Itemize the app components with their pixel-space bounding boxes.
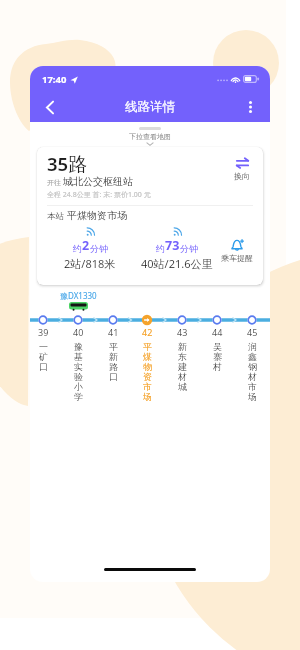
staticText: 73 [165,237,180,254]
staticText: 本站 [47,210,67,222]
staticText: 资 [143,371,152,381]
staticText: 2站/818米 [64,256,116,271]
staticText: 场 [143,391,152,401]
button[interactable]: 乘车提醒 [217,235,257,269]
staticText: 口 [39,361,48,371]
staticText: 40 [73,326,84,338]
staticText: 场 [248,391,257,401]
staticText: 41 [108,326,119,338]
staticText: 42 [142,326,153,338]
button[interactable]: 换向 [222,151,262,189]
staticText: 煤 [143,351,152,361]
staticText: 豫DX1330 [60,290,97,301]
staticText: 全程 24.8公里 首: 末: 票价1.00 元 [47,190,151,200]
staticText: 小 [74,381,83,391]
staticText: 40站/21.6公里 [141,256,213,271]
staticText: 基 [74,351,83,361]
staticText: 39 [38,326,49,338]
staticText: 开往 [47,178,63,188]
staticText: 物 [143,361,152,371]
staticText: 材 [178,371,187,381]
staticText: 分钟 [90,243,108,254]
staticText: 新 [178,341,187,351]
staticText: 45 [247,326,258,338]
staticText: 材 [248,371,257,381]
staticText: 平 [143,341,152,351]
staticText: 建 [178,361,187,371]
staticText: 一 [39,341,48,351]
staticText: 下拉查看地图 [129,132,171,141]
staticText: 约 [73,243,82,254]
staticText: 2 [82,237,90,254]
staticText: 寨 [213,351,222,361]
staticText: 学 [74,391,83,401]
button[interactable]: More options [235,92,265,122]
staticText: 口 [109,371,118,381]
staticText: 乘车提醒 [221,253,253,263]
staticText: 路 [109,361,118,371]
staticText: 验 [74,371,83,381]
staticText: 43 [177,326,188,338]
staticText: 东 [178,351,187,361]
staticText: 吴 [213,341,222,351]
button[interactable]: Back [34,92,66,122]
staticText: 分钟 [180,243,198,254]
staticText: 17:40 [42,73,67,86]
staticText: 润 [248,341,257,351]
staticText: 线路详情 [125,99,175,115]
staticText: 换向 [234,171,250,181]
staticText: 村 [213,361,222,371]
staticText: 市 [248,381,257,391]
staticText: 平煤物资市场 [67,209,127,222]
staticText: 豫 [74,341,83,351]
staticText: 矿 [39,351,48,361]
staticText: 实 [74,361,83,371]
staticText: 35路 [47,151,87,176]
staticText: 鑫 [248,351,257,361]
staticText: 钢 [248,361,257,371]
staticText: 约 [156,243,165,254]
staticText: 平 [109,341,118,351]
staticText: 44 [212,326,223,338]
staticText: 新 [109,351,118,361]
staticText: 市 [143,381,152,391]
staticText: 城北公交枢纽站 [63,175,133,188]
staticText: 城 [178,381,187,391]
